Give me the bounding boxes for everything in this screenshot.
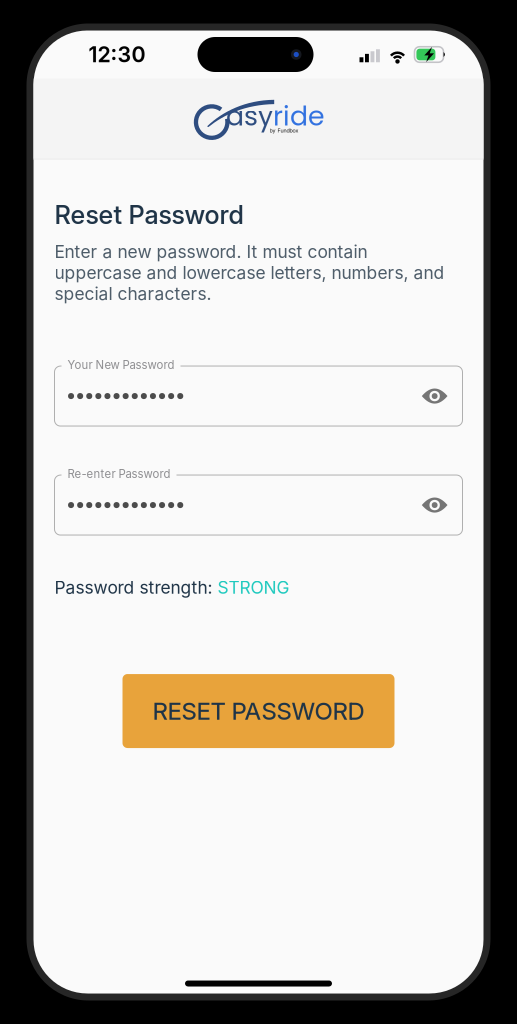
staticText: Your New Password [61,358,180,372]
staticText: Password strength: [54,577,217,598]
staticText: Re-enter Password [61,467,176,481]
staticText: Enter a new password. It must contain up… [54,241,444,304]
staticText: 12:30 [88,42,145,67]
staticText: by Fundbox [269,127,298,134]
button[interactable]: Re-enter Password [54,469,462,535]
staticText: RESET PASSWORD [152,696,364,725]
staticText: asy [226,97,273,135]
staticText: Reset Password [54,199,243,230]
staticText: ride [273,97,325,135]
staticText: STRONG [217,577,289,598]
button[interactable]: Your New Password [54,360,462,426]
button[interactable]: RESET PASSWORD [122,674,394,748]
